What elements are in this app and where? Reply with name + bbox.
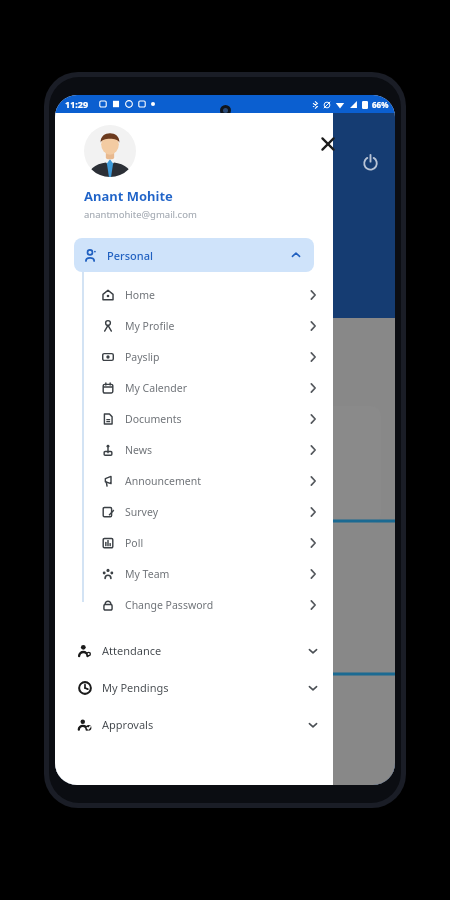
staticText: Documents bbox=[125, 412, 182, 426]
staticText: Personal bbox=[107, 248, 153, 263]
button[interactable]: News bbox=[55, 434, 333, 465]
button[interactable]: Attendance bbox=[55, 632, 333, 669]
staticText: 11:29 bbox=[65, 98, 89, 110]
button[interactable]: Poll bbox=[55, 527, 333, 558]
button[interactable]: Power bbox=[353, 145, 387, 179]
staticText: Change Password bbox=[125, 598, 214, 612]
staticText: My Calender bbox=[125, 381, 187, 395]
button[interactable]: Announcement bbox=[55, 465, 333, 496]
button[interactable]: My Calender bbox=[55, 372, 333, 403]
button[interactable]: Home bbox=[55, 279, 333, 310]
button[interactable]: Change Password bbox=[55, 589, 333, 620]
staticText: anantmohite@gmail.com bbox=[84, 208, 197, 221]
button[interactable]: Close bbox=[311, 127, 345, 161]
button[interactable]: My Pendings bbox=[55, 669, 333, 706]
staticText: Home bbox=[125, 288, 155, 302]
staticText: Announcement bbox=[125, 474, 201, 488]
button[interactable]: My Profile bbox=[55, 310, 333, 341]
staticText: Anant Mohite bbox=[84, 187, 173, 205]
button[interactable]: Approvals bbox=[55, 706, 333, 743]
staticText: Approvals bbox=[102, 717, 154, 732]
button[interactable]: Payslip bbox=[55, 341, 333, 372]
staticText: 66% bbox=[372, 99, 389, 110]
button[interactable]: Documents bbox=[55, 403, 333, 434]
staticText: My Team bbox=[125, 567, 170, 581]
staticText: My Pendings bbox=[102, 680, 169, 695]
staticText: Poll bbox=[125, 536, 144, 550]
staticText: Payslip bbox=[125, 350, 160, 364]
staticText: Survey bbox=[125, 505, 158, 519]
staticText: My Profile bbox=[125, 319, 175, 333]
staticText: News bbox=[125, 443, 152, 457]
button[interactable]: My Team bbox=[55, 558, 333, 589]
staticText: Attendance bbox=[102, 643, 162, 658]
button[interactable]: Personal bbox=[74, 238, 314, 272]
button[interactable]: Survey bbox=[55, 496, 333, 527]
